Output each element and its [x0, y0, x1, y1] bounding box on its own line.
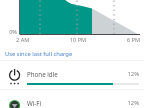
button[interactable]: Wi-Fi	[0, 89, 144, 108]
staticText: 12%	[110, 99, 139, 107]
staticText: 0%	[0, 28, 17, 36]
staticText: Phone idle	[27, 70, 58, 78]
staticText: 6 PM	[104, 36, 140, 44]
staticText: Wi-Fi	[27, 99, 42, 107]
other: Wi-Fi	[9, 98, 22, 108]
staticText: 10 PM	[58, 36, 98, 44]
staticText: Use since last full charge	[5, 50, 73, 58]
button[interactable]: Use since last full charge	[0, 45, 144, 59]
button[interactable]: Phone idle	[0, 60, 144, 89]
staticText: 12%	[110, 70, 139, 78]
other: Phone idle	[9, 69, 22, 86]
staticText: 2 AM	[16, 36, 30, 44]
